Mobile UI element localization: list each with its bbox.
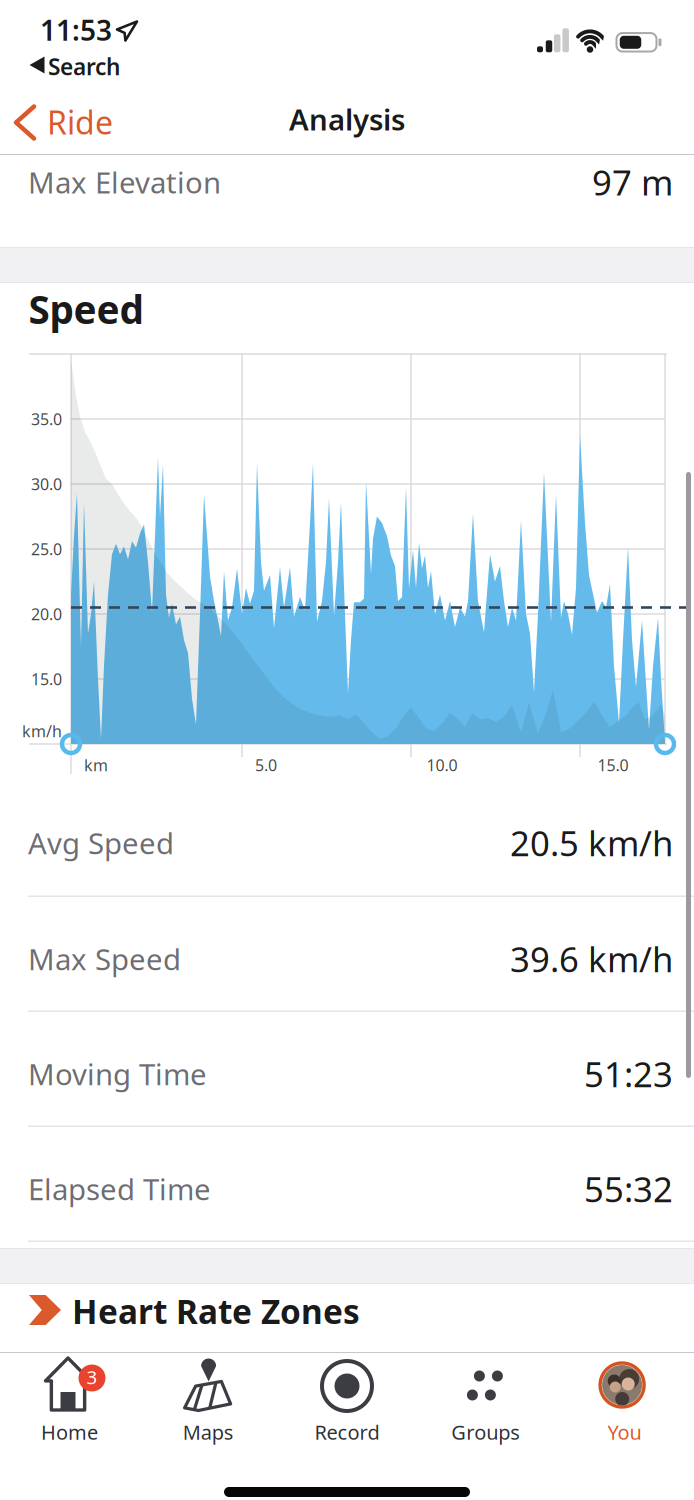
staticText: 10.0 <box>426 754 457 776</box>
staticText: Speed <box>28 283 143 335</box>
staticText: Groups <box>451 1419 520 1445</box>
staticText: You <box>608 1419 642 1445</box>
staticText: 11:53 <box>40 11 112 49</box>
staticText: Moving Time <box>28 1054 207 1093</box>
staticText: 5.0 <box>255 754 277 776</box>
staticText: Avg Speed <box>28 823 174 862</box>
staticText: Ride <box>47 101 113 143</box>
button[interactable]: Home <box>0 1354 139 1458</box>
staticText: 35.0 <box>31 408 62 430</box>
staticText: 51:23 <box>584 1051 673 1097</box>
button[interactable]: Heart Rate Zones <box>0 1284 694 1352</box>
staticText: 30.0 <box>31 473 62 495</box>
button[interactable]: You <box>555 1354 694 1458</box>
staticText: km <box>84 754 108 776</box>
button[interactable]: Record <box>278 1354 416 1458</box>
staticText: 55:32 <box>584 1166 673 1212</box>
staticText: Home <box>41 1419 98 1445</box>
staticText: 15.0 <box>31 668 62 690</box>
button[interactable]: Maps <box>139 1354 278 1458</box>
staticText: 39.6 km/h <box>510 936 673 982</box>
staticText: Analysis <box>289 99 405 138</box>
staticText: 20.5 km/h <box>510 820 673 866</box>
staticText: Elapsed Time <box>28 1169 211 1208</box>
staticText: Search <box>48 51 120 81</box>
staticText: 25.0 <box>31 538 62 560</box>
staticText: Max Elevation <box>28 162 221 201</box>
staticText: km/h <box>22 720 62 742</box>
staticText: 97 m <box>592 159 673 205</box>
staticText: 20.0 <box>31 603 62 625</box>
staticText: 3 <box>86 1365 97 1389</box>
staticText: Maps <box>183 1419 234 1445</box>
staticText: Heart Rate Zones <box>72 1289 360 1333</box>
staticText: Record <box>314 1419 379 1445</box>
staticText: 15.0 <box>597 754 628 776</box>
button[interactable]: Groups <box>416 1354 555 1458</box>
staticText: Max Speed <box>28 939 181 978</box>
button[interactable]: Back to Ride <box>0 90 130 155</box>
